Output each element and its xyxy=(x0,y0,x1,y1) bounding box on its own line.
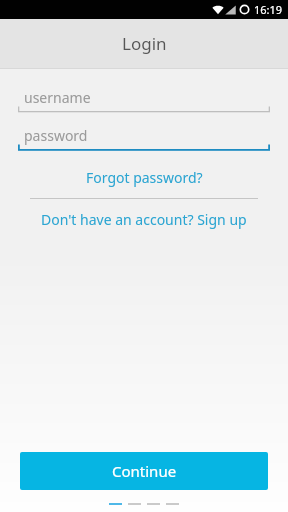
staticText: password xyxy=(24,126,88,145)
other: Wi-Fi xyxy=(212,5,224,15)
staticText: Forgot password? xyxy=(86,168,203,187)
staticText: 16:19 xyxy=(254,2,283,17)
staticText: Don't have an account? Sign up xyxy=(41,210,247,229)
staticText: Continue xyxy=(112,461,177,481)
staticText: Login xyxy=(122,32,167,55)
button[interactable]: Don't have an account? Sign up xyxy=(18,207,270,232)
button[interactable]: Continue xyxy=(20,452,268,490)
button[interactable]: Forgot password? xyxy=(18,165,270,190)
button[interactable]: password xyxy=(18,124,270,152)
button[interactable]: username xyxy=(18,86,270,114)
staticText: username xyxy=(24,88,91,107)
other: Status xyxy=(239,4,250,15)
other: Cellular signal xyxy=(225,5,236,15)
